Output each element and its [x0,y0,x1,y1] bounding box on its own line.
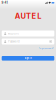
button[interactable]: Sign in [2,56,54,61]
staticText: 9:41 [1,1,7,4]
staticText: AUTEL [15,12,41,21]
staticText: Forgot password? [39,47,54,49]
staticText: Password [8,40,20,43]
button[interactable]: Forgot password? [38,47,54,50]
staticText: Account [8,32,19,35]
staticText: Sign in [24,57,31,60]
button[interactable]: Show password [49,40,52,43]
